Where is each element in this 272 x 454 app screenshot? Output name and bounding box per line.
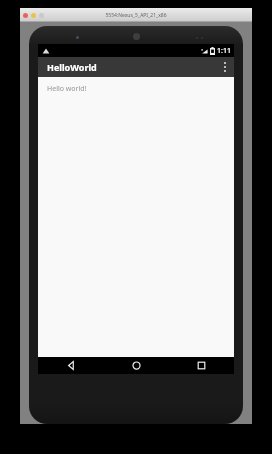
button[interactable]: Zoom: [39, 13, 44, 18]
button[interactable]: Back: [38, 357, 104, 374]
button[interactable]: Home: [104, 357, 169, 374]
button[interactable]: Minimize: [31, 13, 36, 18]
button[interactable]: More options: [216, 57, 234, 77]
staticText: 5554:Nexus_5_API_21_x86: [105, 12, 167, 19]
button[interactable]: Close: [23, 13, 28, 18]
staticText: Hello world!: [47, 84, 87, 94]
button[interactable]: Recent apps: [169, 357, 234, 374]
staticText: HelloWorld: [47, 61, 97, 73]
staticText: 1:11: [217, 46, 231, 56]
